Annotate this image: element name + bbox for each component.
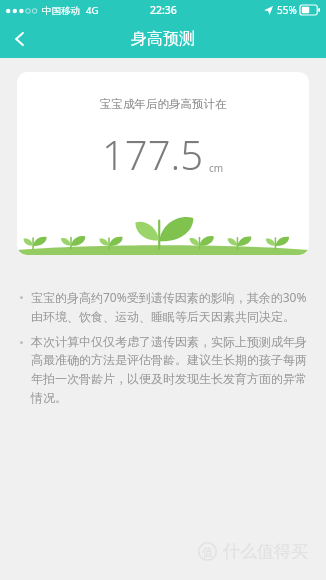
staticText: 55% — [277, 3, 297, 17]
staticText: 宝宝成年后的身高预计在 — [100, 97, 227, 111]
staticText: 什么值得买 — [223, 541, 308, 562]
button[interactable]: 宝宝成年后的身高预计在 — [17, 72, 309, 255]
button[interactable]: Back — [0, 20, 40, 58]
staticText: 177.5 — [102, 127, 204, 181]
staticText: 22:36 — [150, 3, 177, 17]
staticText: cm — [209, 161, 224, 175]
staticText: 中国移动 — [42, 5, 80, 17]
staticText: 4G — [86, 4, 99, 17]
staticText: 值 — [202, 545, 213, 559]
staticText: 宝宝的身高约70%受到遗传因素的影响，其余的30%由环境、饮食、运动、睡眠等后天… — [31, 289, 310, 325]
staticText: 本次计算中仅仅考虑了遗传因素，实际上预测成年身高最准确的方法是评估骨龄。建议生长… — [31, 334, 310, 406]
staticText: 身高预测 — [131, 29, 195, 49]
